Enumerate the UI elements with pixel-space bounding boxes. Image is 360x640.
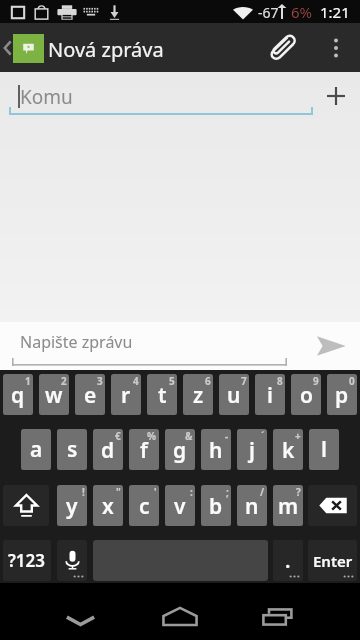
staticText: b <box>209 492 223 521</box>
staticText: ' <box>154 485 157 499</box>
staticText: i <box>267 381 273 410</box>
button[interactable]: j <box>237 429 267 470</box>
staticText: c <box>139 492 150 521</box>
staticText: ! <box>82 485 85 499</box>
staticText: 8 <box>277 374 283 388</box>
button[interactable]: Hide keyboard <box>35 583 125 640</box>
button[interactable]: d <box>93 429 123 470</box>
button[interactable]: Enter <box>308 540 357 581</box>
button[interactable]: Navigate up <box>0 23 170 72</box>
button[interactable]: . <box>273 540 303 581</box>
staticText: % <box>147 429 157 443</box>
button[interactable]: l <box>309 429 339 470</box>
staticText: Enter <box>313 551 353 571</box>
staticText: s <box>67 435 78 464</box>
staticText: + <box>295 429 301 443</box>
button[interactable]: c <box>129 485 159 526</box>
button[interactable]: w <box>39 374 69 415</box>
button[interactable]: Home <box>135 583 225 640</box>
staticText: m <box>278 492 299 521</box>
staticText: Napište zprávu <box>20 331 133 353</box>
staticText: 1:21 <box>320 2 350 22</box>
staticText: v <box>174 492 186 521</box>
button[interactable]: k <box>273 429 303 470</box>
button[interactable]: More options <box>312 23 360 72</box>
staticText: 9 <box>313 374 319 388</box>
staticText: 4 <box>133 374 139 388</box>
button[interactable]: t <box>147 374 177 415</box>
staticText: € <box>115 429 121 443</box>
staticText: l <box>321 435 327 464</box>
staticText: 2 <box>61 374 67 388</box>
staticText: q <box>11 381 25 410</box>
button[interactable]: e <box>75 374 105 415</box>
staticText: 0 <box>349 374 355 388</box>
button[interactable]: b <box>201 485 231 526</box>
staticText: -67 <box>258 3 279 22</box>
button[interactable]: Shift <box>3 485 49 526</box>
staticText: g <box>173 436 187 465</box>
button[interactable]: q <box>3 374 33 415</box>
staticText: e <box>84 381 97 410</box>
staticText: 1 <box>25 374 31 388</box>
staticText: : <box>190 485 193 499</box>
button[interactable]: Recent apps <box>235 583 325 640</box>
button[interactable]: h <box>201 429 231 470</box>
button[interactable]: a <box>21 429 51 470</box>
staticText: w <box>45 381 63 410</box>
staticText: o <box>300 381 313 410</box>
button[interactable]: Add recipient <box>312 72 360 120</box>
button[interactable]: y <box>57 485 87 526</box>
button[interactable]: o <box>291 374 321 415</box>
button[interactable]: f <box>129 429 159 470</box>
staticText: ?123 <box>8 549 46 572</box>
staticText: a <box>30 435 43 464</box>
button[interactable]: s <box>57 429 87 470</box>
staticText: u <box>227 381 241 410</box>
button[interactable]: r <box>111 374 141 415</box>
staticText: p <box>335 381 349 410</box>
staticText: - <box>225 429 229 443</box>
button[interactable]: p <box>327 374 357 415</box>
button[interactable]: ?123 <box>3 540 51 581</box>
button[interactable]: Voice input <box>57 540 87 581</box>
staticText: h <box>209 436 223 465</box>
staticText: d <box>101 436 115 465</box>
staticText: ´ <box>261 429 265 443</box>
button[interactable]: i <box>255 374 285 415</box>
button[interactable]: u <box>219 374 249 415</box>
button[interactable]: Send message <box>302 322 360 370</box>
staticText: k <box>282 436 295 465</box>
button[interactable]: m <box>273 485 303 526</box>
button[interactable]: n <box>237 485 267 526</box>
staticText: 6 <box>205 374 211 388</box>
staticText: t <box>158 381 167 410</box>
button[interactable]: Backspace <box>308 485 357 526</box>
staticText: ? <box>296 485 301 499</box>
staticText: x <box>102 492 114 521</box>
staticText: 5 <box>169 374 175 388</box>
staticText: Nová zpráva <box>48 36 164 63</box>
staticText: Komu <box>20 84 73 110</box>
staticText: 3 <box>97 374 103 388</box>
staticText: 7 <box>241 374 247 388</box>
button[interactable]: z <box>183 374 213 415</box>
staticText: ; <box>226 485 229 499</box>
button[interactable]: g <box>165 429 195 470</box>
staticText: . <box>285 547 291 574</box>
staticText: y <box>66 492 78 521</box>
staticText: r <box>121 381 131 410</box>
staticText: z <box>193 381 204 410</box>
staticText: f <box>140 436 148 465</box>
staticText: / <box>260 485 265 499</box>
button[interactable]: Attach file <box>256 23 306 72</box>
staticText: 6% <box>291 2 313 22</box>
staticText: j <box>249 436 255 465</box>
staticText: & <box>185 429 193 443</box>
other: Navigate up <box>4 41 11 55</box>
staticText: " <box>116 485 121 499</box>
button[interactable]: x <box>93 485 123 526</box>
staticText: n <box>245 492 259 521</box>
button[interactable]: v <box>165 485 195 526</box>
